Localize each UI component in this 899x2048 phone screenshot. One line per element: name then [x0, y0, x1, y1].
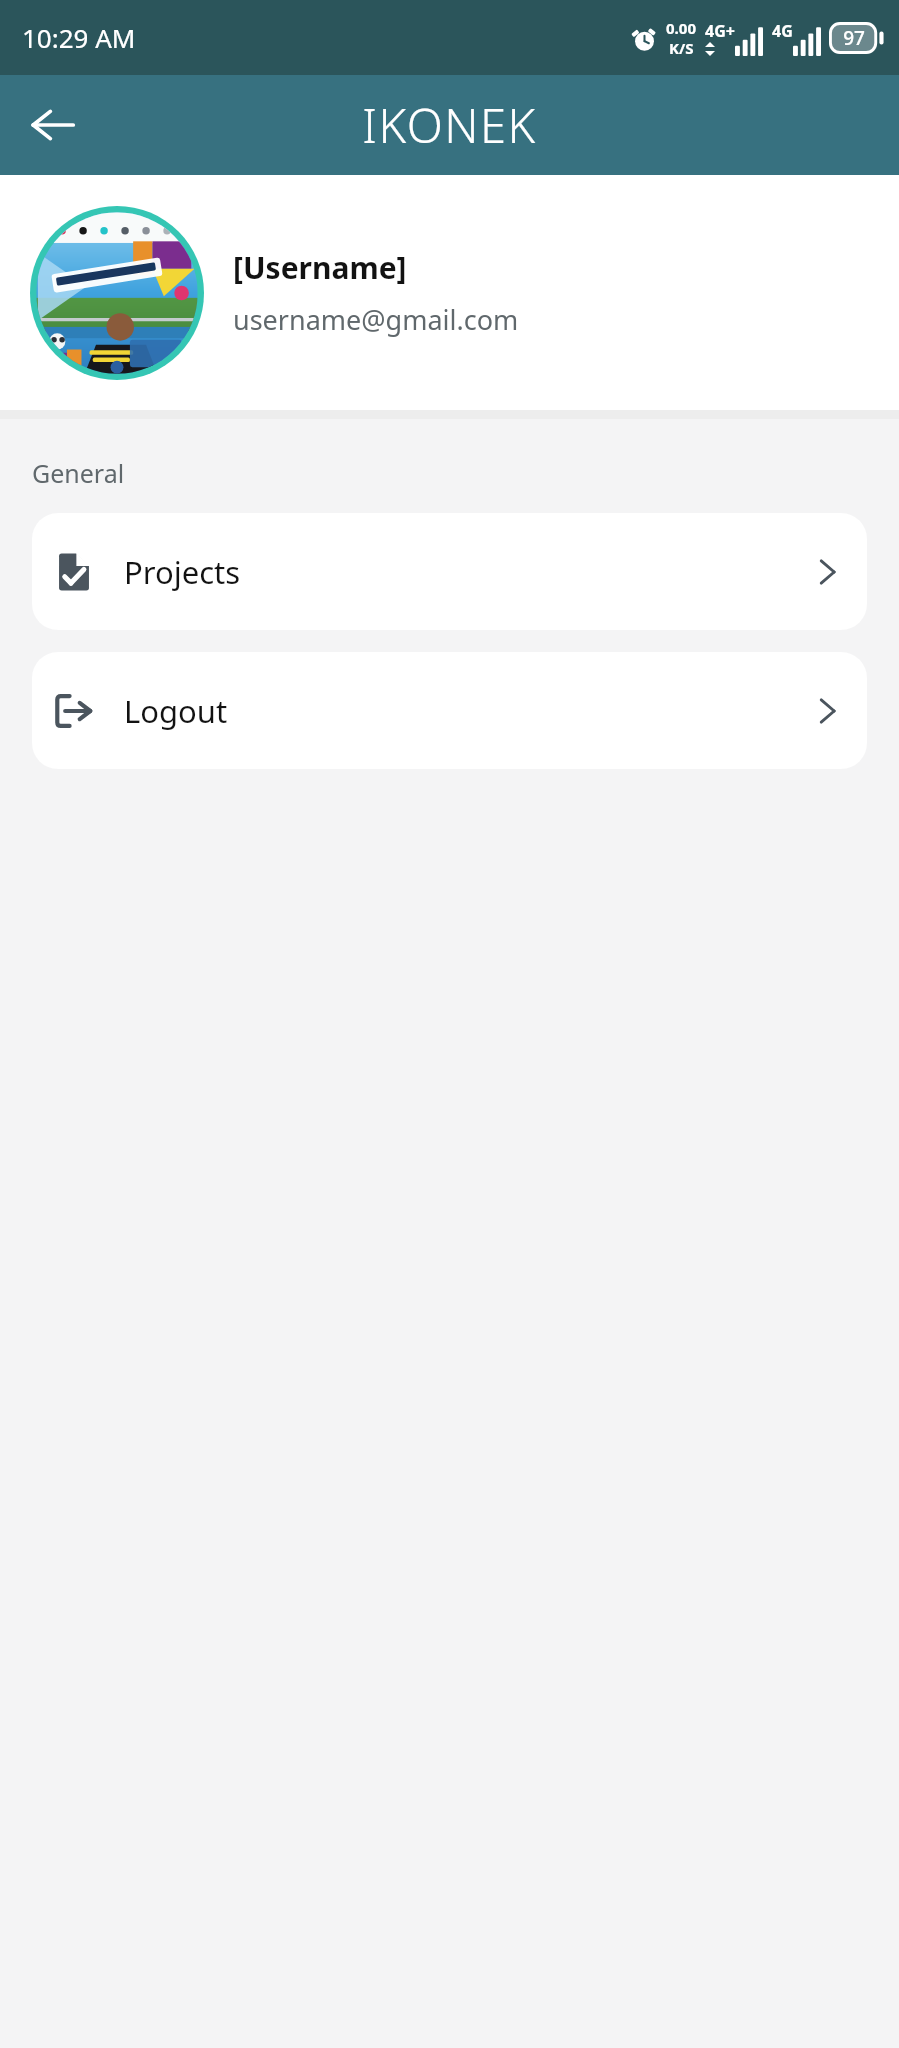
staticText: IKONEK [362, 93, 537, 157]
staticText: 4G [772, 20, 793, 42]
staticText: [Username] [233, 247, 407, 288]
staticText: K/S [669, 38, 694, 58]
staticText: username@gmail.com [233, 301, 519, 338]
other: Logout [52, 689, 96, 733]
other: Projects [52, 550, 96, 594]
staticText: General [32, 456, 125, 490]
staticText: 97 [843, 25, 865, 51]
staticText: 10:29 AM [22, 20, 136, 55]
button[interactable]: Logout [32, 652, 867, 769]
staticText: 4G+ [705, 20, 735, 42]
button[interactable]: Back [20, 92, 86, 158]
button[interactable]: Projects [32, 513, 867, 630]
staticText: Projects [124, 551, 241, 593]
button[interactable]: [Username] [0, 175, 899, 410]
staticText: Logout [124, 690, 228, 732]
staticText: 0.00 [666, 18, 696, 38]
